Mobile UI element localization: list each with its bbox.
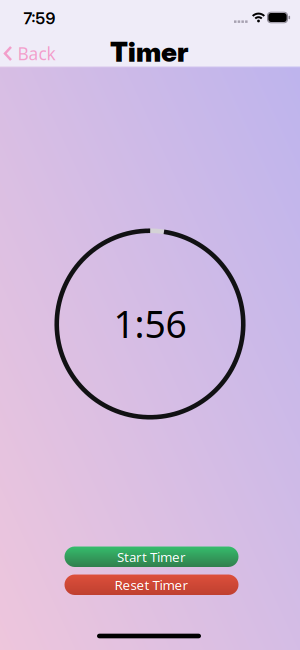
button[interactable]: Start Timer [64, 546, 238, 567]
button[interactable]: Back [3, 42, 55, 65]
staticText: Back [17, 42, 55, 65]
staticText: 1:56 [113, 299, 186, 348]
staticText: Reset Timer [114, 576, 188, 594]
staticText: Start Timer [117, 548, 186, 566]
staticText: 7:59 [23, 8, 55, 28]
button[interactable]: Reset Timer [64, 574, 238, 595]
staticText: Timer [110, 35, 188, 68]
